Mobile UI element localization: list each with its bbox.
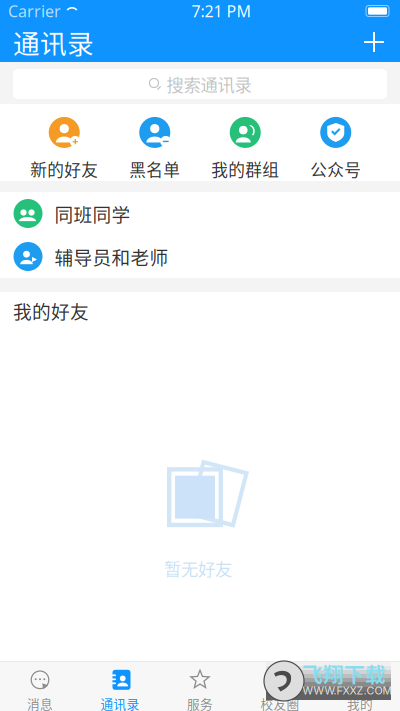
staticText: 通讯录 xyxy=(13,23,94,61)
button[interactable]: 同班同学 xyxy=(0,192,400,235)
staticText: 飞翔下载 xyxy=(302,658,386,688)
staticText: 7:21 PM xyxy=(191,0,251,22)
button[interactable]: Add contact xyxy=(352,22,396,62)
staticText: 新的好友 xyxy=(30,157,98,181)
staticText: 我的群组 xyxy=(211,157,279,181)
staticText: 暂无好友 xyxy=(164,556,232,581)
staticText: 黑名单 xyxy=(129,157,180,181)
staticText: 同班同学 xyxy=(54,200,130,227)
staticText: 辅导员和老师 xyxy=(54,243,168,270)
staticText: 我的好友 xyxy=(13,297,89,324)
button[interactable]: 新的好友 xyxy=(19,104,109,181)
button[interactable]: 校友圈 xyxy=(240,662,320,711)
button[interactable]: 辅导员和老师 xyxy=(0,235,400,278)
staticText: 服务 xyxy=(187,694,213,711)
staticText: 通讯录 xyxy=(100,694,139,711)
staticText: 我的 xyxy=(347,694,373,711)
button[interactable]: 公众号 xyxy=(290,104,381,181)
staticText: Carrier xyxy=(8,0,61,22)
staticText: 消息 xyxy=(27,694,53,711)
button[interactable]: 黑名单 xyxy=(109,104,200,181)
staticText: 公众号 xyxy=(310,157,361,181)
button[interactable]: 我的 xyxy=(320,662,400,711)
button[interactable]: 通讯录 xyxy=(80,662,160,711)
staticText: 校友圈 xyxy=(260,694,299,711)
staticText: WWW.FXXZ.COM xyxy=(302,684,392,697)
button[interactable]: 消息 xyxy=(0,662,80,711)
button[interactable]: 我的群组 xyxy=(200,104,290,181)
staticText: 搜索通讯录 xyxy=(166,71,251,97)
button[interactable]: 服务 xyxy=(160,662,240,711)
